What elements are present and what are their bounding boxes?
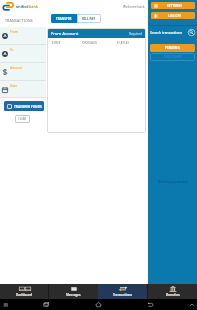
button[interactable]: TRANSFER: [51, 14, 77, 23]
staticText: TRANSFER FUNDS: [14, 105, 42, 109]
staticText: BILL PAY: [82, 17, 96, 21]
button[interactable]: Dashboard: [0, 284, 48, 299]
button[interactable]: SETTINGS: [151, 2, 195, 9]
staticText: From Account: [51, 31, 79, 37]
other: Home: [95, 301, 102, 308]
staticText: TRANSFER: [56, 17, 72, 21]
staticText: TRANSACTIONS: [5, 18, 33, 23]
staticText: Welcome back: [123, 5, 145, 9]
button[interactable]: BILL PAY: [77, 14, 101, 23]
staticText: No history available: [158, 180, 188, 184]
other: Recents: [43, 301, 50, 308]
staticText: Dashboard: [16, 293, 33, 297]
button[interactable]: Search transactions: [150, 29, 195, 36]
staticText: XXXXX34635: [82, 41, 98, 45]
staticText: From: [10, 30, 18, 34]
other: Search: [188, 29, 195, 36]
staticText: Amount: [10, 66, 23, 70]
other: Back: [147, 301, 154, 308]
staticText: Search transactions: [150, 30, 183, 35]
staticText: Date: [10, 84, 18, 88]
button[interactable]: Branches: [148, 284, 197, 299]
staticText: Branches: [166, 293, 180, 297]
button[interactable]: CLEAR: [15, 115, 30, 123]
button[interactable]: TRANSFER FUNDS: [4, 101, 44, 111]
button[interactable]: Transactions: [98, 284, 147, 299]
staticText: LOG OFF: [168, 14, 182, 18]
other: Expand: [189, 302, 195, 308]
staticText: E-FREE: [52, 41, 61, 45]
button[interactable]: Messages: [49, 284, 98, 299]
staticText: $1,831.43: [117, 41, 129, 45]
staticText: PENDING: [165, 46, 180, 50]
staticText: SETTINGS: [167, 4, 183, 8]
staticText: unified: [16, 4, 29, 9]
staticText: Transactions: [113, 293, 132, 297]
button[interactable]: PROCESSED: [150, 53, 195, 61]
staticText: Messages: [66, 293, 81, 297]
staticText: bank: [29, 4, 38, 9]
staticText: Required: [129, 32, 142, 36]
button[interactable]: LOG OFF: [151, 12, 195, 19]
staticText: PROCESSED: [164, 55, 182, 59]
button[interactable]: PENDING: [150, 44, 195, 52]
staticText: To: [10, 48, 14, 52]
staticText: CLEAR: [18, 117, 27, 121]
other: Keyboard: [3, 302, 9, 308]
